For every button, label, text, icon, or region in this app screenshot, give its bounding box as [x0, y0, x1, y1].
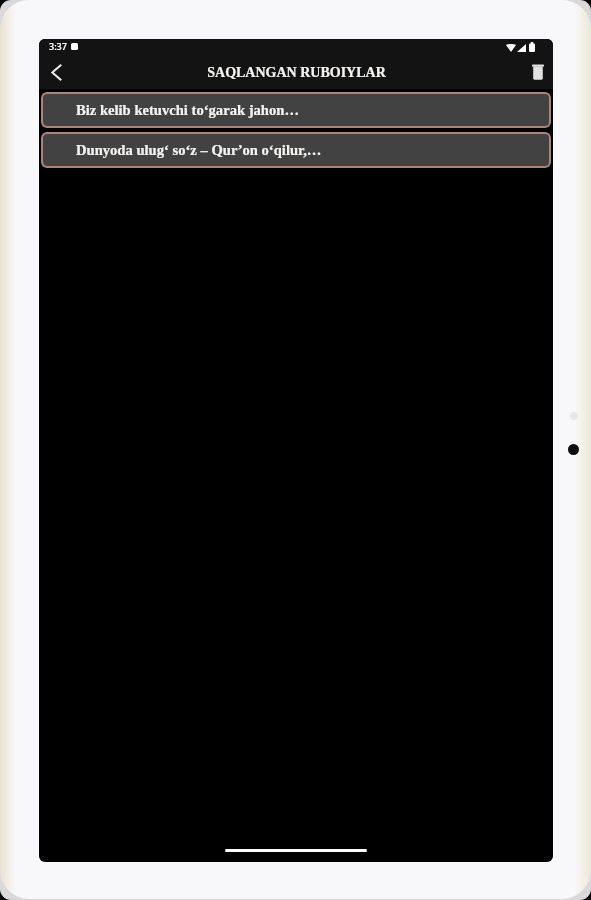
staticText: SAQLANGAN RUBOIYLAR: [207, 65, 386, 81]
button[interactable]: Delete all saved: [521, 55, 553, 88]
button[interactable]: Dunyoda ulug‘ so‘z – Qur’on o‘qilur,…: [41, 132, 551, 168]
staticText: 3:37: [49, 40, 67, 52]
staticText: Biz kelib ketuvchi to‘garak jahon…: [76, 102, 299, 118]
staticText: Dunyoda ulug‘ so‘z – Qur’on o‘qilur,…: [76, 142, 322, 158]
button[interactable]: Back: [39, 56, 73, 89]
button[interactable]: Biz kelib ketuvchi to‘garak jahon…: [41, 92, 551, 128]
